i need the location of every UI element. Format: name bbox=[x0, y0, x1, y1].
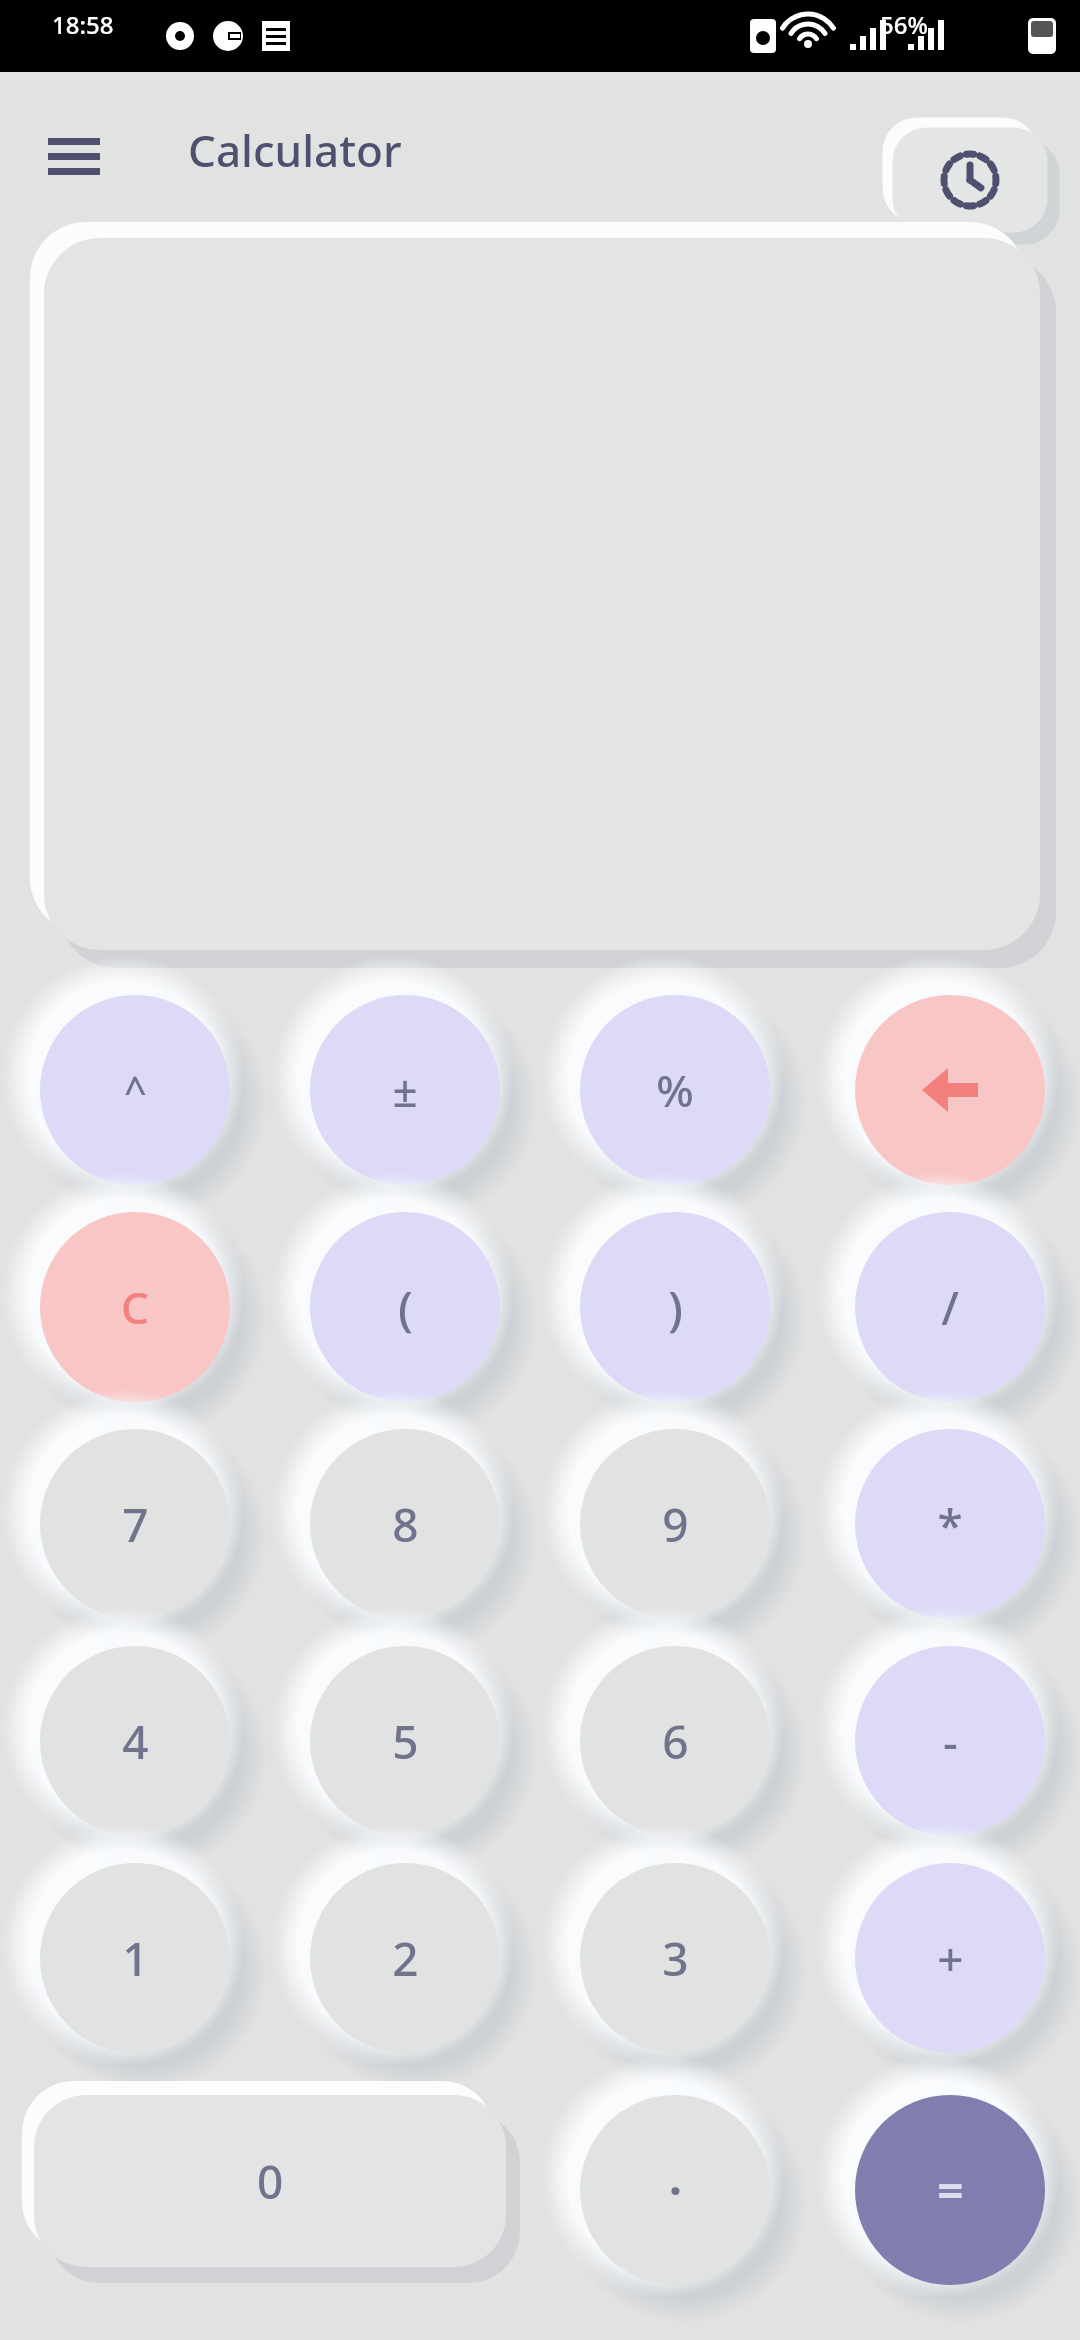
button[interactable]: 5 bbox=[310, 1646, 500, 1836]
staticText: ^ bbox=[124, 1063, 147, 1117]
staticText: 1 bbox=[122, 1927, 149, 1990]
staticText: 5 bbox=[392, 1710, 419, 1773]
staticText: 6 bbox=[662, 1710, 689, 1773]
staticText: 9 bbox=[662, 1493, 689, 1556]
button[interactable]: ( bbox=[310, 1212, 500, 1402]
button[interactable]: History bbox=[894, 128, 1046, 232]
staticText: ) bbox=[668, 1275, 683, 1340]
button[interactable]: ) bbox=[580, 1212, 770, 1402]
button[interactable]: 9 bbox=[580, 1429, 770, 1619]
staticText: / bbox=[941, 1276, 959, 1339]
staticText: 56% bbox=[880, 8, 928, 41]
button[interactable]: 7 bbox=[40, 1429, 230, 1619]
staticText: Calculator bbox=[188, 120, 402, 180]
staticText: = bbox=[937, 2159, 964, 2222]
button[interactable]: * bbox=[855, 1429, 1045, 1619]
button[interactable]: / bbox=[855, 1212, 1045, 1402]
button[interactable]: = bbox=[855, 2095, 1045, 2285]
staticText: 0 bbox=[257, 2150, 284, 2213]
staticText: 2 bbox=[392, 1927, 419, 1990]
button[interactable]: - bbox=[855, 1646, 1045, 1836]
staticText: % bbox=[656, 1060, 694, 1120]
button[interactable]: 4 bbox=[40, 1646, 230, 1836]
button[interactable]: 3 bbox=[580, 1863, 770, 2053]
staticText: 8 bbox=[392, 1493, 419, 1556]
button[interactable]: 2 bbox=[310, 1863, 500, 2053]
button[interactable]: C bbox=[40, 1212, 230, 1402]
button[interactable]: % bbox=[580, 995, 770, 1185]
button[interactable]: ^ bbox=[40, 995, 230, 1185]
staticText: ( bbox=[398, 1275, 413, 1340]
button[interactable]: 8 bbox=[310, 1429, 500, 1619]
staticText: - bbox=[943, 1710, 958, 1773]
staticText: ± bbox=[392, 1060, 418, 1120]
button[interactable]: Backspace bbox=[855, 995, 1045, 1185]
button[interactable]: 6 bbox=[580, 1646, 770, 1836]
button[interactable]: 1 bbox=[40, 1863, 230, 2053]
staticText: * bbox=[937, 1493, 963, 1556]
button[interactable]: ± bbox=[310, 995, 500, 1185]
button[interactable]: · bbox=[580, 2095, 770, 2285]
staticText: 4 bbox=[122, 1710, 149, 1773]
staticText: C bbox=[121, 1277, 149, 1337]
button[interactable]: 0 bbox=[34, 2095, 506, 2267]
staticText: 3 bbox=[662, 1927, 689, 1990]
button[interactable]: Menu bbox=[48, 138, 100, 174]
button[interactable]: + bbox=[855, 1863, 1045, 2053]
staticText: 18:58 bbox=[52, 8, 114, 41]
staticText: · bbox=[669, 2159, 682, 2222]
staticText: + bbox=[937, 1927, 964, 1990]
staticText: 7 bbox=[122, 1493, 149, 1556]
